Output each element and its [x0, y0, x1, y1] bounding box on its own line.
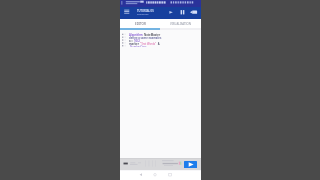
staticText: Algorithm	[129, 33, 144, 36]
button[interactable]: Back	[135, 170, 145, 180]
button[interactable]: VISUALISATION	[160, 19, 201, 28]
button[interactable]: Back to start	[189, 7, 201, 19]
staticText: TUTORIAL 05	[137, 9, 154, 13]
staticText: define a some examples	[129, 36, 162, 39]
staticText: &	[157, 42, 160, 45]
staticText: "Text Words"	[140, 42, 157, 45]
staticText: EDITOR	[135, 22, 146, 26]
staticText: NumberDecs	[130, 45, 147, 47]
button[interactable]: EDITOR	[120, 19, 160, 28]
button[interactable]: Home	[148, 170, 158, 180]
button[interactable]: Run program	[184, 161, 197, 168]
staticText: Functions	[137, 12, 149, 15]
button[interactable]: Recent apps	[161, 170, 171, 180]
staticText: NoteMaster	[144, 33, 161, 36]
button[interactable]: Run	[167, 7, 178, 19]
staticText: VISUALISATION	[170, 22, 191, 26]
staticText: marker	[129, 42, 140, 45]
button[interactable]: Open navigation menu	[120, 7, 134, 19]
staticText: a =	[129, 39, 134, 42]
staticText: 10/2	[134, 39, 140, 42]
button[interactable]: Pause	[178, 7, 189, 19]
